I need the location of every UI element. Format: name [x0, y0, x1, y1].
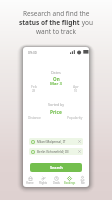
- button[interactable]: Flights: [37, 176, 50, 185]
- other: Remove: [78, 140, 81, 143]
- staticText: 09:30: [28, 50, 37, 55]
- staticText: Popularity: [67, 116, 83, 120]
- button[interactable]: Search: [30, 163, 82, 172]
- staticText: want to track: [36, 27, 76, 36]
- staticText: On: [53, 76, 60, 82]
- staticText: Berlin (Schonefeld), DE: [37, 150, 69, 154]
- staticText: Sorted by: [48, 102, 65, 107]
- staticText: 10: [74, 89, 78, 93]
- staticText: you: [80, 18, 93, 27]
- staticText: Research and find the: [23, 9, 90, 18]
- button[interactable]: Deals: [50, 176, 63, 185]
- staticText: Apr: [73, 84, 79, 89]
- staticText: Search: [50, 165, 63, 170]
- staticText: Flights: [39, 181, 48, 185]
- button[interactable]: Home: [23, 176, 37, 185]
- staticText: Mar 3: [50, 81, 62, 87]
- staticText: Milan (Malpensa), IT: [37, 140, 66, 144]
- staticText: Feb: [31, 84, 37, 89]
- staticText: Dates: [51, 70, 61, 75]
- staticText: Deals: [53, 181, 60, 185]
- staticText: 28: [32, 89, 36, 93]
- staticText: Bookings: [64, 181, 76, 185]
- staticText: Price: [50, 109, 62, 116]
- button[interactable]: Berlin (Schonefeld), DE: [29, 148, 83, 155]
- staticText: Home: [26, 181, 34, 185]
- staticText: Distance: [28, 116, 41, 120]
- other: Remove: [78, 150, 81, 153]
- staticText: status of the flight: [19, 18, 80, 27]
- staticText: Me: [81, 181, 85, 185]
- button[interactable]: Me: [76, 176, 89, 185]
- button[interactable]: Milan (Malpensa), IT: [29, 138, 83, 145]
- button[interactable]: Bookings: [63, 176, 76, 185]
